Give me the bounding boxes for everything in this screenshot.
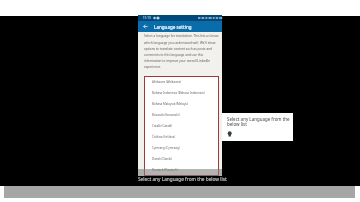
staticText: Català (Català) (152, 124, 173, 128)
staticText: Select a language for translation. This … (144, 34, 219, 69)
button[interactable]: Dansk (Dansk) (144, 153, 219, 164)
staticText: Čeština (čeština) (152, 135, 175, 139)
button[interactable]: Select any Language from the below list (222, 113, 293, 141)
staticText: Bahasa Malaysia (Melayu) (152, 102, 189, 106)
staticText: Cymraeg (Cymraeg) (152, 146, 180, 150)
staticText: Language setting (154, 24, 192, 30)
button[interactable]: Afrikaans (Afrikaans) (144, 76, 219, 87)
staticText: Bahasa Indonesia (Bahasa Indonesia) (152, 91, 205, 95)
button[interactable]: Back (141, 22, 150, 31)
button[interactable]: Čeština (čeština) (144, 131, 219, 142)
staticText: Dansk (Dansk) (152, 157, 173, 161)
staticText: Select any Language from the below list (227, 116, 290, 128)
button[interactable]: Bosanski (bosanski) (144, 109, 219, 120)
button[interactable]: Deutsch (Deutsch) (144, 164, 219, 175)
staticText: Bosanski (bosanski) (152, 113, 180, 117)
button[interactable]: Català (Català) (144, 120, 219, 131)
button[interactable]: Bahasa Malaysia (Melayu) (144, 98, 219, 109)
staticText: Deutsch (Deutsch) (152, 168, 178, 172)
button[interactable]: Bahasa Indonesia (Bahasa Indonesia) (144, 87, 219, 98)
staticText: 11:13 (143, 16, 151, 20)
staticText: Select any Language from the below list (138, 176, 227, 182)
button[interactable]: Cymraeg (Cymraeg) (144, 142, 219, 153)
staticText: Afrikaans (Afrikaans) (152, 80, 182, 84)
